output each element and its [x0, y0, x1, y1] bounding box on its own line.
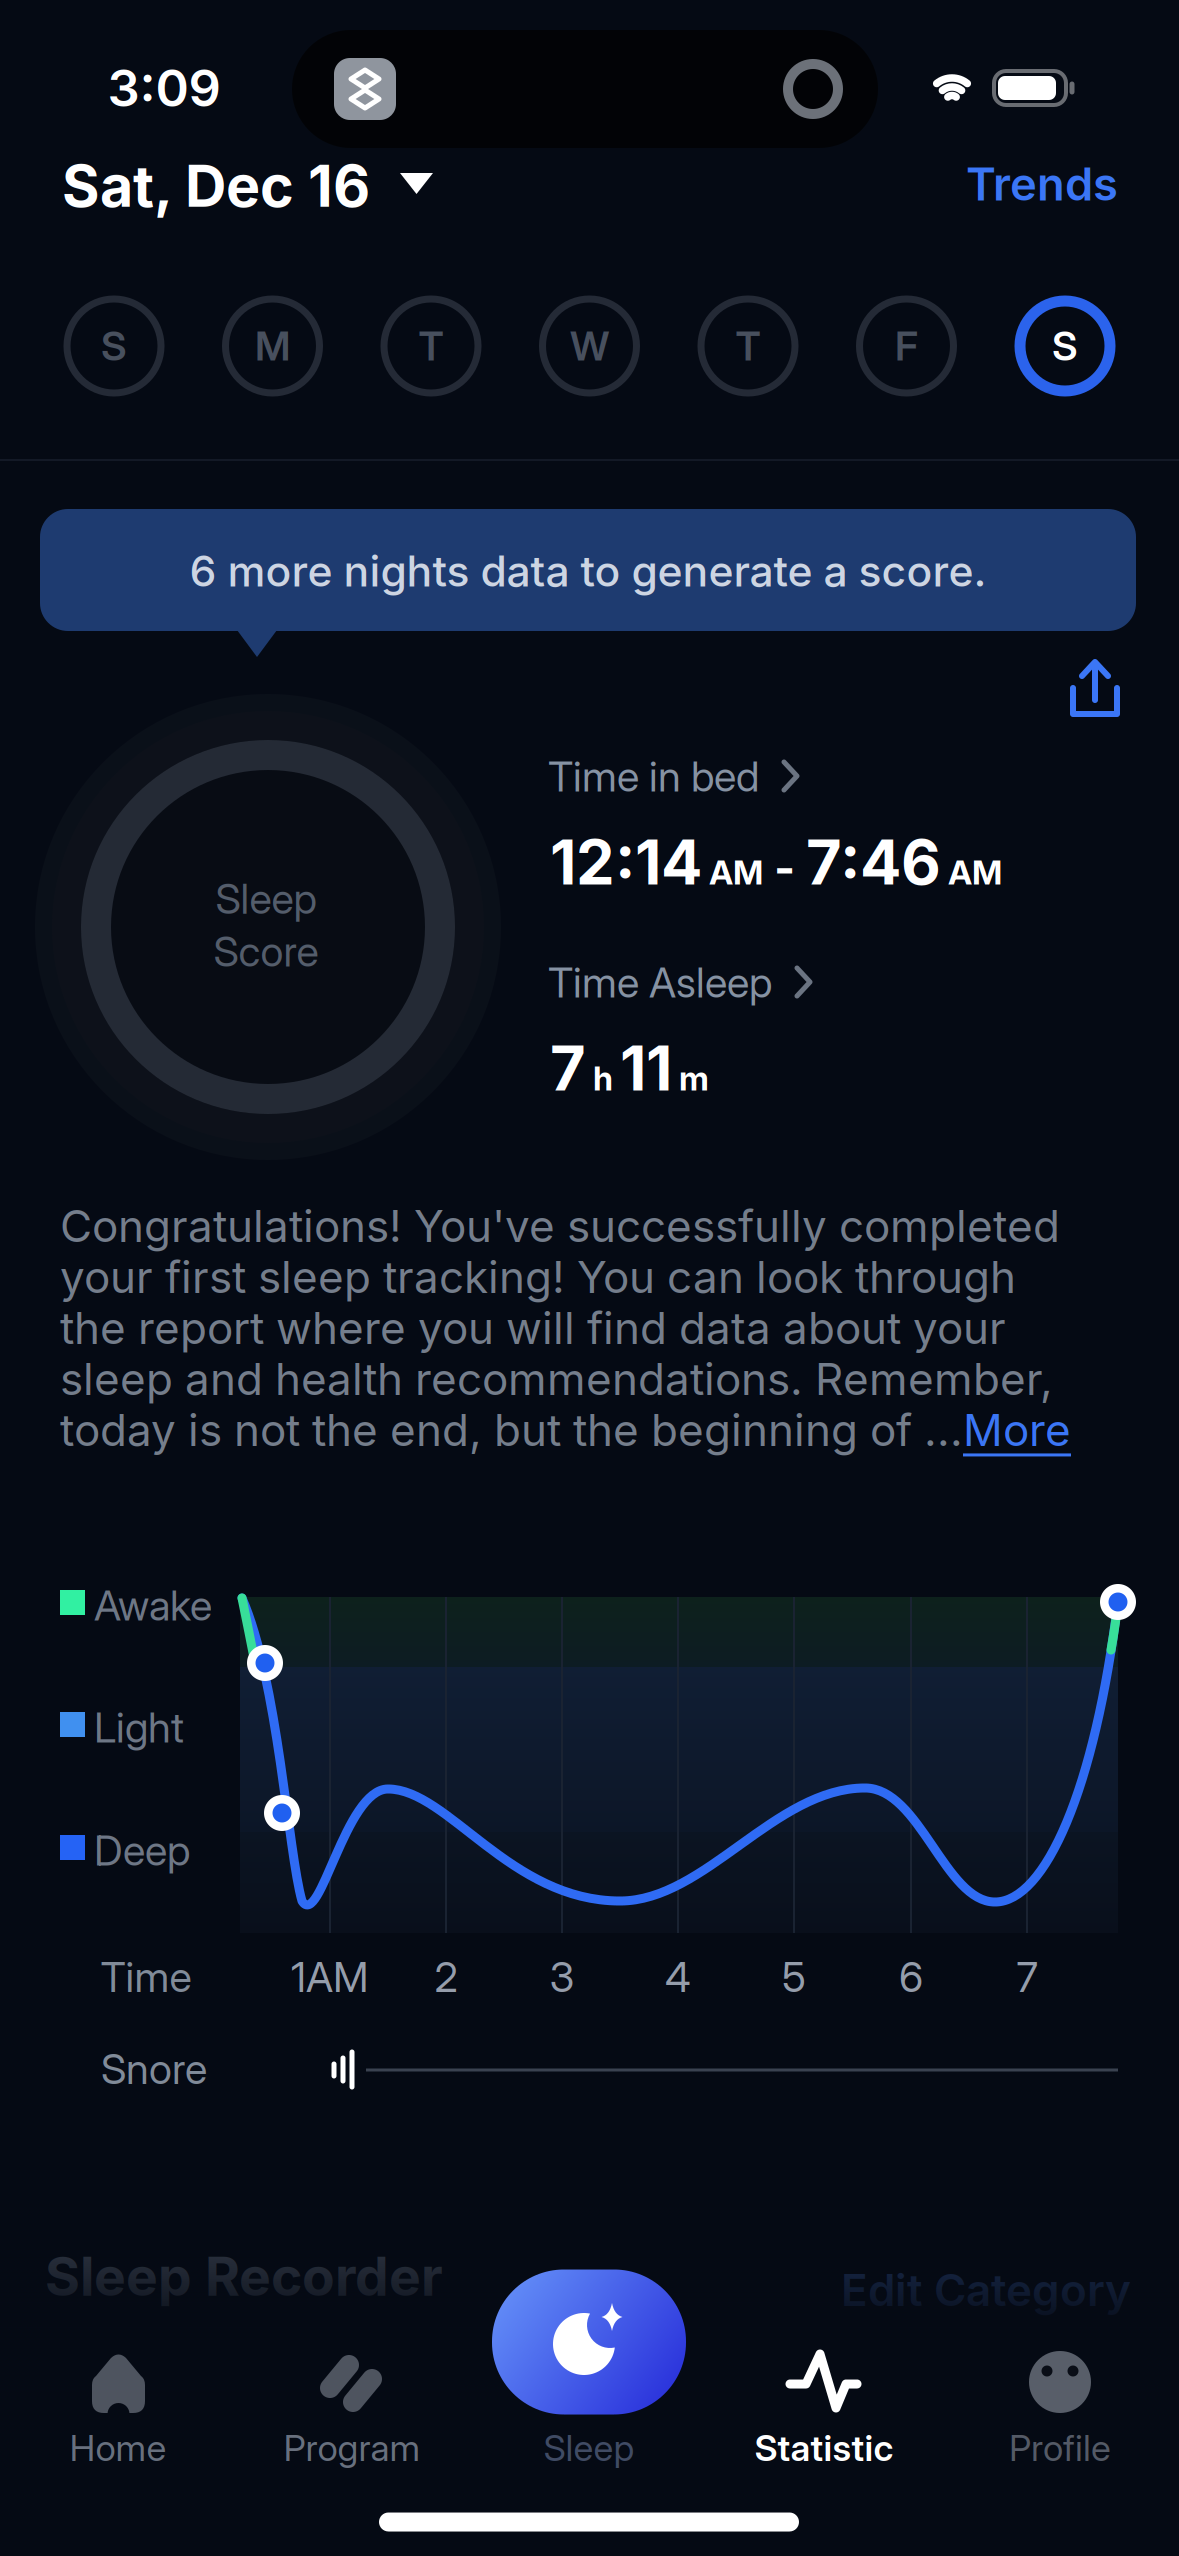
staticText: 7	[550, 1032, 586, 1104]
staticText: Light	[94, 1703, 184, 1752]
staticText: -	[763, 841, 806, 895]
staticText: h	[586, 1059, 620, 1098]
staticText: 3:09	[107, 58, 220, 118]
staticText: Profile	[1009, 2427, 1111, 2469]
staticText: AM	[941, 853, 1002, 892]
staticText: Snore	[101, 2045, 207, 2093]
staticText: Sat, Dec 16	[62, 152, 370, 220]
staticText: Deep	[94, 1826, 190, 1875]
staticText: More	[963, 1404, 1071, 1456]
staticText: sleep and health recommendations. Rememb…	[60, 1353, 1053, 1405]
staticText: Edit Category	[841, 2264, 1131, 2316]
staticText: Sleep	[215, 874, 316, 923]
staticText: Trends	[966, 157, 1118, 211]
staticText: Sleep Recorder	[45, 2245, 443, 2308]
staticText: 6	[899, 1953, 923, 2001]
staticText: Score	[213, 927, 318, 976]
staticText: Time	[100, 1953, 191, 2001]
staticText: AM	[702, 853, 763, 892]
staticText: m	[672, 1059, 709, 1098]
staticText: S	[1052, 322, 1078, 370]
staticText: 2	[434, 1953, 457, 2001]
staticText: 7	[1016, 1953, 1037, 2001]
staticText: Time Asleep	[548, 958, 772, 1007]
staticText: F	[895, 322, 918, 370]
staticText: T	[418, 322, 443, 370]
staticText: Statistic	[754, 2427, 893, 2469]
staticText: S	[101, 322, 127, 370]
staticText: your first sleep tracking! You can look …	[60, 1251, 1016, 1303]
staticText: Awake	[94, 1581, 212, 1630]
staticText: 12:14	[550, 826, 702, 898]
staticText: W	[570, 322, 609, 370]
staticText: 6 more nights data to generate a score.	[189, 546, 986, 596]
staticText: M	[255, 322, 290, 370]
staticText: 11	[620, 1032, 672, 1104]
staticText: Congratulations! You've successfully com…	[60, 1200, 1060, 1252]
staticText: the report where you will find data abou…	[60, 1302, 1006, 1354]
staticText: 3	[549, 1953, 574, 2001]
staticText: 7:46	[806, 826, 941, 898]
staticText: Program	[283, 2427, 420, 2469]
staticText: Home	[69, 2427, 166, 2469]
staticText: Time in bed	[548, 752, 759, 801]
staticText: 1AM	[291, 1953, 369, 2001]
staticText: 4	[665, 1953, 691, 2001]
staticText: today is not the end, but the beginning …	[60, 1404, 963, 1456]
staticText: Sleep	[543, 2427, 634, 2469]
staticText: 5	[782, 1953, 806, 2001]
staticText: T	[735, 322, 760, 370]
